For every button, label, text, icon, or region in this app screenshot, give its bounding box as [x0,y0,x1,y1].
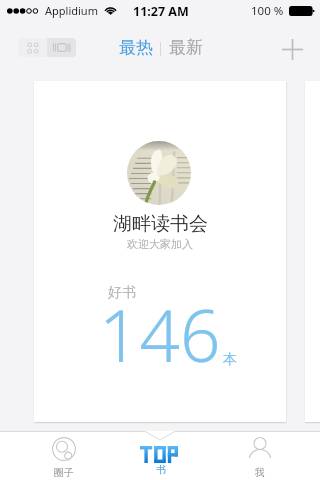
button[interactable]: Card view [47,38,76,57]
button[interactable]: 最新 [163,34,208,60]
staticText: 好书 [108,284,136,302]
staticText: 圈子 [54,466,74,479]
staticText: 最新 [169,37,203,58]
staticText: Applidium [45,3,98,18]
button[interactable]: 最热 [113,34,158,60]
staticText: 本 [223,351,237,369]
staticText: 100 % [251,3,284,19]
staticText: 书 [156,463,166,476]
staticText: 最热 [119,37,153,58]
button[interactable]: Circles [15,431,112,480]
staticText: 11:27 AM [133,3,189,20]
staticText: 欢迎大家加入 [127,237,193,251]
staticText: 146 [99,286,221,383]
button[interactable]: Grid view [18,38,47,57]
button[interactable]: Me [211,431,308,480]
staticText: 我 [255,466,265,479]
button[interactable]: Add [270,27,314,71]
button[interactable]: 湖畔读书会 [34,81,286,422]
staticText: 湖畔读书会 [113,212,208,236]
button[interactable]: Books [112,431,209,480]
